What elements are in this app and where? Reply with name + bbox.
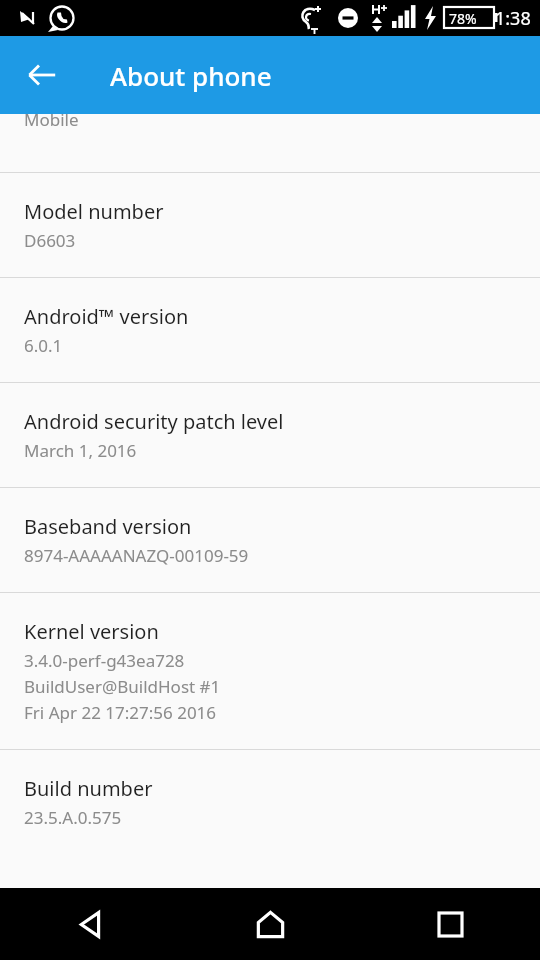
staticText: March 1, 2016 bbox=[24, 439, 137, 462]
staticText: 78% bbox=[449, 9, 477, 28]
button[interactable]: Android security patch level bbox=[0, 383, 540, 487]
button[interactable]: Baseband version bbox=[0, 488, 540, 592]
button[interactable]: Build number bbox=[0, 750, 540, 854]
staticText: D6603 bbox=[24, 229, 76, 252]
staticText: About phone bbox=[110, 58, 272, 93]
button[interactable]: Android™ version bbox=[0, 278, 540, 382]
button[interactable]: Send anonymous data and usage statistics… bbox=[0, 114, 540, 172]
button[interactable]: Model number bbox=[0, 173, 540, 277]
button[interactable]: Home bbox=[180, 888, 360, 960]
staticText: Mobile bbox=[24, 114, 79, 131]
staticText: Baseband version bbox=[24, 513, 192, 540]
staticText: Fri Apr 22 17:27:56 2016 bbox=[24, 701, 217, 724]
staticText: Android security patch level bbox=[24, 408, 284, 435]
staticText: BuildUser@BuildHost #1 bbox=[24, 675, 221, 698]
staticText: Build number bbox=[24, 775, 153, 802]
staticText: Kernel version bbox=[24, 618, 159, 645]
staticText: Model number bbox=[24, 198, 164, 225]
staticText: 1:38 bbox=[495, 6, 531, 31]
staticText: 6.0.1 bbox=[24, 334, 63, 357]
staticText: 23.5.A.0.575 bbox=[24, 806, 122, 829]
button[interactable]: Navigate up bbox=[14, 47, 70, 103]
button[interactable]: Kernel version bbox=[0, 593, 540, 749]
staticText: 3.4.0-perf-g43ea728 bbox=[24, 649, 185, 672]
button[interactable]: Back bbox=[0, 888, 180, 960]
staticText: Android™ version bbox=[24, 303, 189, 330]
button[interactable]: Recent apps bbox=[360, 888, 540, 960]
staticText: 8974-AAAAANAZQ-00109-59 bbox=[24, 544, 249, 567]
